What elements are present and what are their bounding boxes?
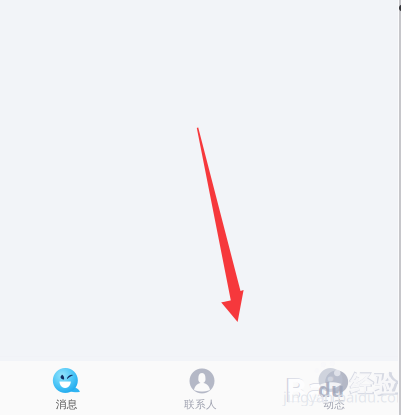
staticText: 动态 [323,398,345,411]
staticText: jingyan.baidu.com [283,387,401,406]
staticText: 消息 [56,398,78,411]
staticText: 经验 [349,369,399,400]
staticText: Bai [285,368,335,410]
staticText: 经验 [350,370,396,398]
button[interactable]: 联系人 [134,365,267,411]
staticText: du [318,376,344,403]
staticText: Bai [284,367,336,411]
button[interactable]: 动态 [267,365,401,411]
staticText: 联系人 [184,398,217,411]
button[interactable]: 消息 [0,365,134,411]
